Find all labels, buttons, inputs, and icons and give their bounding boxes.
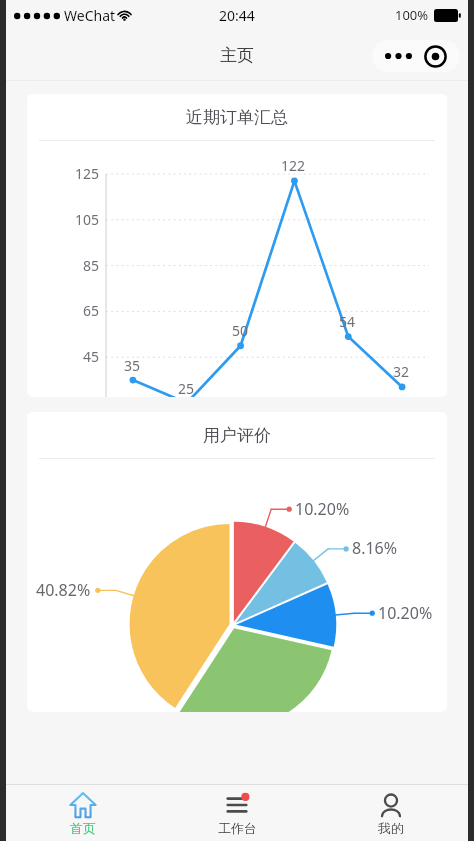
staticText: WeChat bbox=[64, 6, 116, 25]
staticText: 100% bbox=[395, 6, 429, 24]
staticText: 工作台 bbox=[218, 820, 257, 836]
staticText: 20:44 bbox=[219, 6, 255, 25]
staticText: 主页 bbox=[220, 45, 254, 66]
staticText: 122 bbox=[281, 156, 306, 175]
staticText: 40.82% bbox=[36, 579, 91, 601]
staticText: 85 bbox=[82, 256, 99, 275]
staticText: 125 bbox=[74, 164, 99, 183]
staticText: 我的 bbox=[378, 820, 404, 836]
staticText: 54 bbox=[339, 312, 356, 331]
staticText: 用户评价 bbox=[203, 425, 271, 446]
staticText: 首页 bbox=[70, 820, 96, 836]
button[interactable]: 首页 bbox=[6, 785, 160, 841]
staticText: 10.20% bbox=[378, 602, 433, 624]
staticText: 近期订单汇总 bbox=[186, 107, 288, 128]
staticText: 65 bbox=[82, 301, 99, 320]
staticText: 45 bbox=[82, 347, 99, 366]
staticText: 50 bbox=[232, 321, 249, 340]
staticText: 105 bbox=[74, 210, 99, 229]
staticText: 8.16% bbox=[352, 537, 398, 559]
staticText: 32 bbox=[393, 362, 410, 381]
staticText: 10.20% bbox=[295, 498, 350, 520]
button[interactable]: 近期订单汇总 bbox=[27, 94, 447, 397]
staticText: 35 bbox=[124, 356, 141, 375]
button[interactable]: More options bbox=[372, 40, 460, 72]
staticText: 25 bbox=[178, 379, 195, 397]
button[interactable]: 我的 bbox=[314, 785, 468, 841]
button[interactable]: 用户评价 bbox=[27, 412, 447, 712]
button[interactable]: 工作台 bbox=[160, 785, 314, 841]
